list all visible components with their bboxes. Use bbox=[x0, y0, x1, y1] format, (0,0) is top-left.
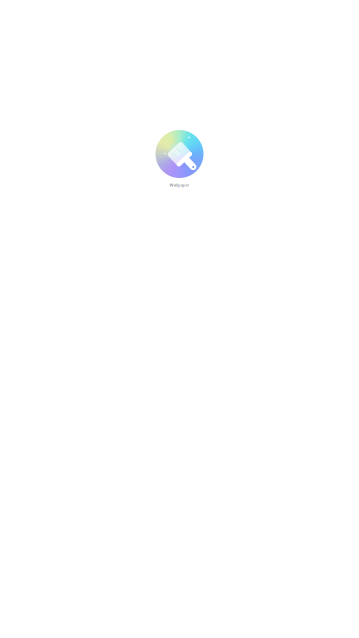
staticText: Wallpaper bbox=[169, 182, 189, 188]
